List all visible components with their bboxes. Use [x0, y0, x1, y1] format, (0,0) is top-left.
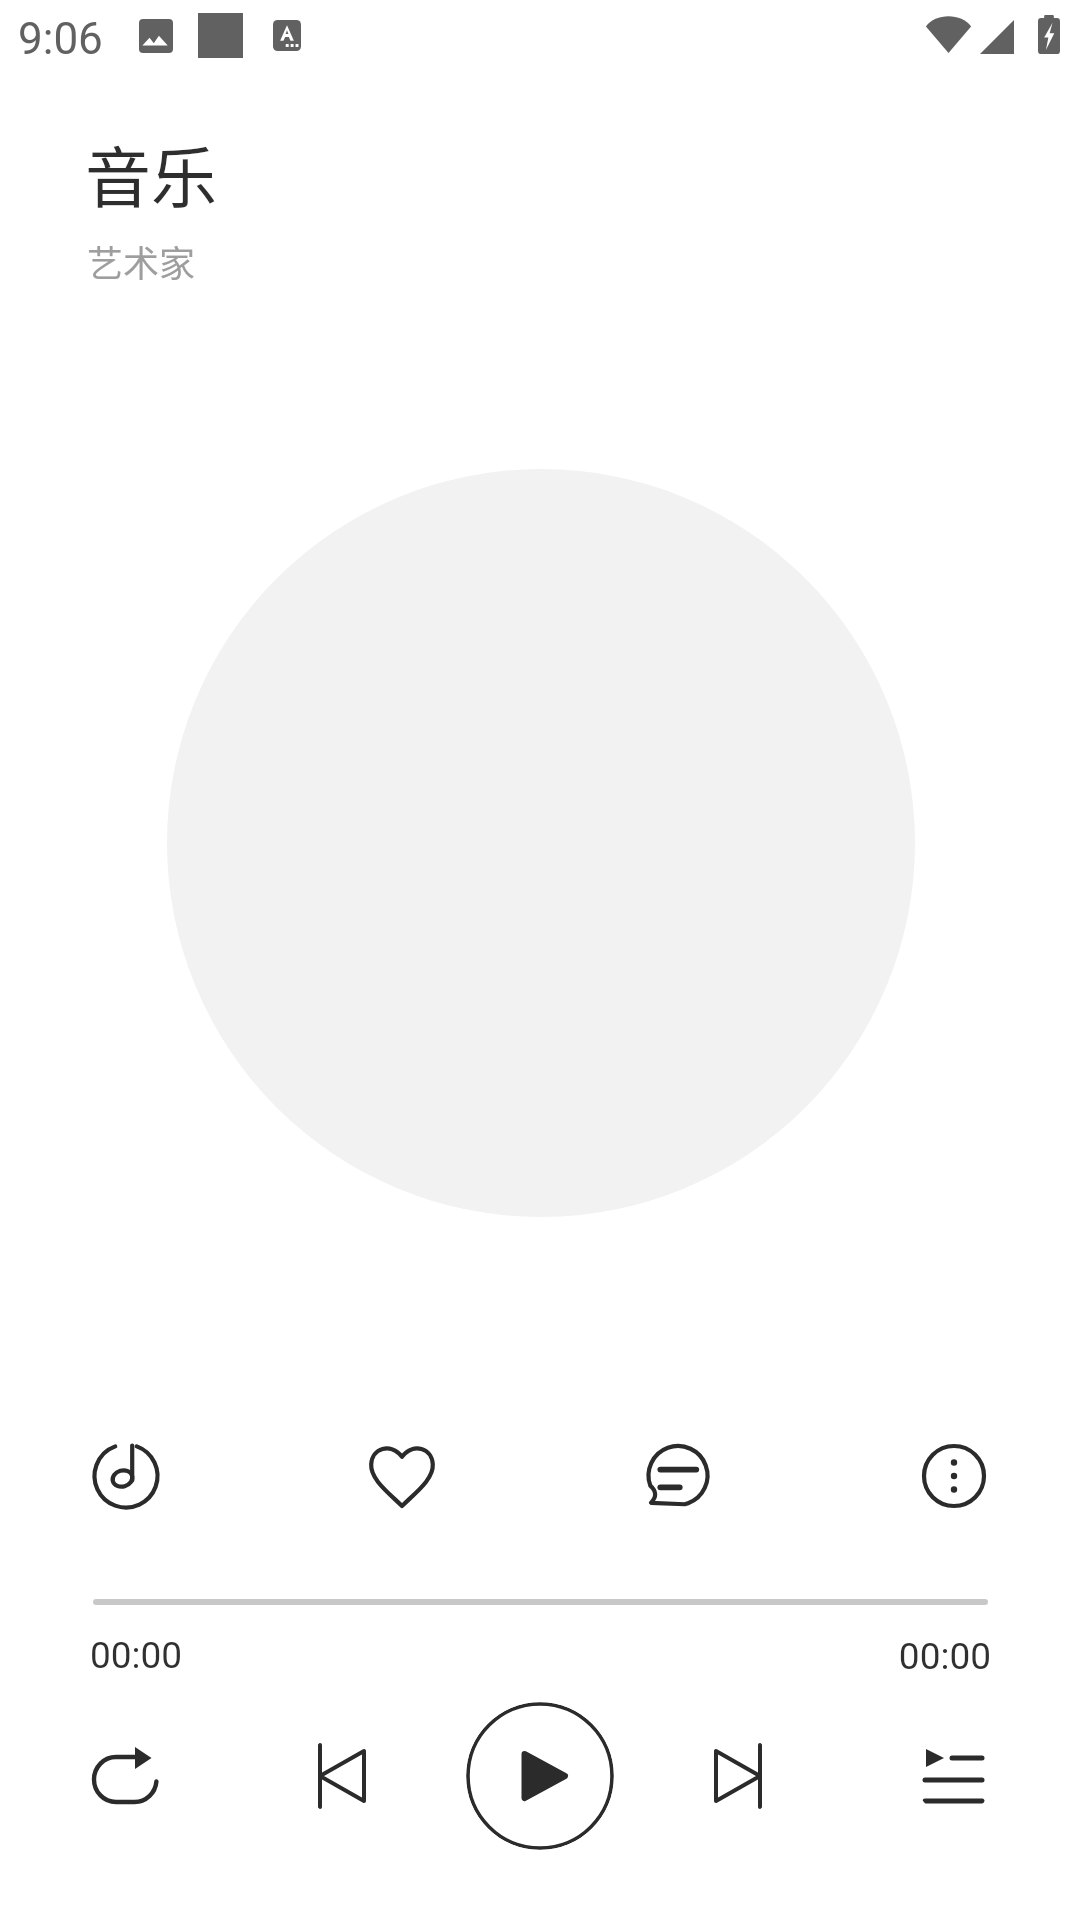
- button[interactable]: Like: [362, 1436, 442, 1516]
- button[interactable]: Song info: [86, 1436, 166, 1516]
- staticText: 艺术家: [87, 235, 196, 287]
- button[interactable]: Next: [698, 1736, 778, 1816]
- staticText: 00:00: [90, 1634, 183, 1677]
- button[interactable]: Repeat: [86, 1736, 166, 1816]
- button[interactable]: Playlist: [914, 1736, 994, 1816]
- button[interactable]: Album art: [167, 469, 915, 1217]
- staticText: 9:06: [18, 13, 103, 65]
- button[interactable]: Previous: [302, 1736, 382, 1816]
- button[interactable]: Comments: [638, 1436, 718, 1516]
- button[interactable]: Play: [466, 1702, 614, 1850]
- staticText: 音乐: [85, 125, 217, 221]
- button[interactable]: More options: [914, 1436, 994, 1516]
- staticText: 00:00: [800, 1635, 991, 1678]
